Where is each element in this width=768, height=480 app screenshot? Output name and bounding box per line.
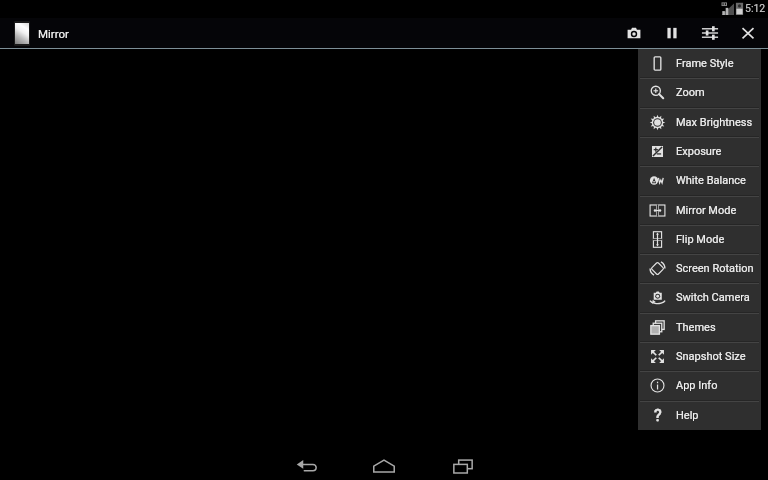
staticText: Frame Style xyxy=(676,57,734,70)
button[interactable]: Switch Camera xyxy=(638,283,761,312)
staticText: Mirror xyxy=(38,27,69,40)
staticText: Mirror Mode xyxy=(676,204,737,217)
button[interactable]: Close xyxy=(729,18,767,48)
button[interactable]: Screen Rotation xyxy=(638,254,761,283)
button[interactable]: Flip Mode xyxy=(638,225,761,254)
button[interactable]: Recents xyxy=(441,444,485,480)
staticText: Snapshot Size xyxy=(676,350,746,363)
button[interactable]: ? xyxy=(638,401,761,430)
button[interactable]: Pause xyxy=(653,18,691,48)
button[interactable]: Camera xyxy=(615,18,653,48)
staticText: Zoom xyxy=(676,86,705,99)
button[interactable]: Zoom xyxy=(638,78,761,107)
button[interactable]: Frame Style xyxy=(638,49,761,78)
staticText: White Balance xyxy=(676,174,746,187)
staticText: Switch Camera xyxy=(676,291,750,304)
button[interactable]: Themes xyxy=(638,313,761,342)
button[interactable]: Max Brightness xyxy=(638,108,761,137)
staticText: Exposure xyxy=(676,145,722,158)
staticText: Help xyxy=(676,409,699,422)
staticText: Themes xyxy=(676,321,716,334)
button[interactable]: Snapshot Size xyxy=(638,342,761,371)
staticText: 5:12 xyxy=(745,2,766,14)
staticText: Screen Rotation xyxy=(676,262,754,275)
staticText: App Info xyxy=(676,379,718,392)
button[interactable]: Back xyxy=(285,444,329,480)
button[interactable]: White Balance xyxy=(638,166,761,195)
staticText: Flip Mode xyxy=(676,233,725,246)
button[interactable]: App Info xyxy=(638,371,761,400)
staticText: Max Brightness xyxy=(676,116,753,129)
staticText: ? xyxy=(654,406,662,425)
button[interactable]: Mirror Mode xyxy=(638,196,761,225)
button[interactable]: Home xyxy=(362,444,406,480)
button[interactable]: Exposure xyxy=(638,137,761,166)
button[interactable]: Settings xyxy=(691,18,729,48)
